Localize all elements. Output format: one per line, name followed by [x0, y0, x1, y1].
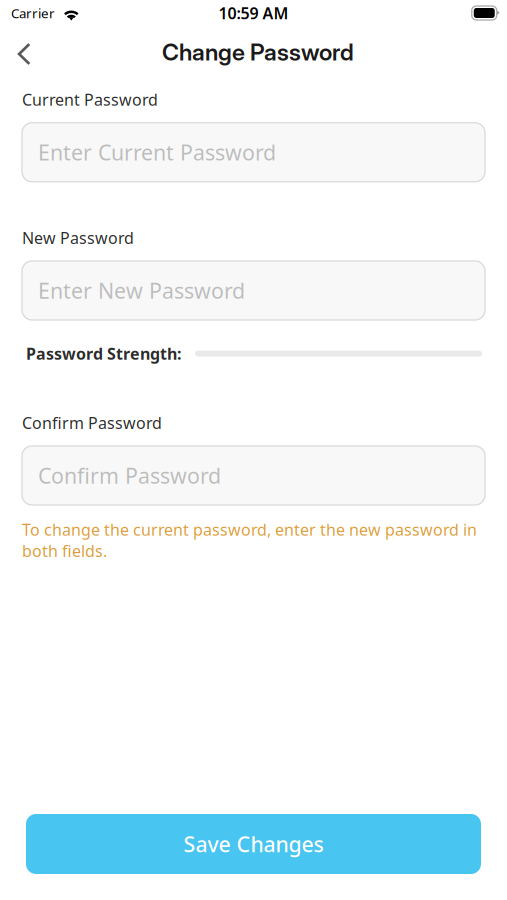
staticText: Save Changes	[183, 830, 323, 858]
staticText: 10:59 AM	[218, 2, 288, 24]
staticText: Change Password	[162, 38, 354, 66]
staticText: Confirm Password	[22, 412, 162, 433]
staticText: Enter Current Password	[38, 138, 276, 166]
button[interactable]: Enter New Password	[22, 261, 485, 320]
staticText: Current Password	[22, 89, 158, 110]
button[interactable]: Confirm Password	[22, 446, 485, 505]
staticText: Carrier	[11, 4, 55, 22]
staticText: Confirm Password	[38, 461, 221, 490]
button[interactable]: Enter Current Password	[22, 123, 485, 182]
staticText: Password Strength:	[26, 343, 181, 364]
button[interactable]: Save Changes	[26, 814, 481, 874]
button[interactable]: Back	[0, 27, 47, 72]
staticText: To change the current password, enter th…	[22, 519, 477, 561]
staticText: New Password	[22, 227, 134, 248]
staticText: Enter New Password	[38, 276, 245, 305]
